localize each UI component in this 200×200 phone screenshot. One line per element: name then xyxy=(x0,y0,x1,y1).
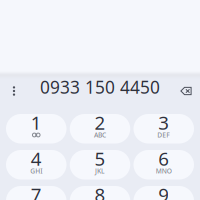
staticText: 1 xyxy=(31,110,42,135)
staticText: 3 xyxy=(158,110,169,135)
button[interactable]: 1 xyxy=(6,114,66,143)
button[interactable]: 7 xyxy=(6,186,66,200)
staticText: MNO xyxy=(156,167,172,175)
button[interactable]: 3 xyxy=(133,114,194,143)
button[interactable]: 2 xyxy=(70,114,130,143)
staticText: ABC xyxy=(94,131,106,139)
staticText: DEF xyxy=(157,131,170,139)
button[interactable]: 5 xyxy=(70,150,130,179)
staticText: GHI xyxy=(30,167,42,175)
button[interactable]: 8 xyxy=(70,186,130,200)
staticText: 2 xyxy=(94,110,105,135)
staticText: 0933 150 4450 xyxy=(40,75,160,98)
staticText: 4 xyxy=(31,146,42,171)
button[interactable]: 9 xyxy=(133,186,194,200)
staticText: JKL xyxy=(95,167,105,175)
staticText: 5 xyxy=(94,146,105,171)
staticText: 8 xyxy=(94,182,105,200)
staticText: 6 xyxy=(158,146,169,171)
button[interactable]: Delete xyxy=(175,79,197,103)
button[interactable]: More options xyxy=(3,79,25,103)
button[interactable]: 6 xyxy=(133,150,194,179)
staticText: 7 xyxy=(31,182,42,200)
button[interactable]: 4 xyxy=(6,150,66,179)
staticText: 9 xyxy=(158,182,169,200)
